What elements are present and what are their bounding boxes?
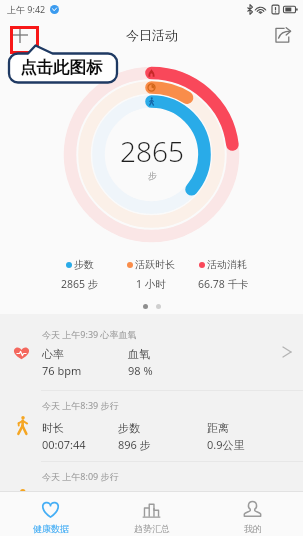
button[interactable]: 今天 上午8:39 步行 — [0, 391, 303, 461]
staticText: 今天 上午8:09 步行 — [42, 470, 119, 482]
staticText: 上午 9:42 — [7, 3, 46, 15]
button[interactable]: 今天 上午8:09 步行 — [0, 462, 303, 492]
staticText: 00:07:44 — [42, 437, 86, 452]
staticText: 我的 — [244, 523, 262, 534]
staticText: 距离 — [207, 421, 229, 435]
button[interactable]: 趋势汇总 — [101, 492, 202, 536]
staticText: 76 bpm — [42, 363, 82, 378]
staticText: 896 步 — [118, 437, 151, 452]
staticText: 今天 上午9:39 心率血氧 — [42, 328, 137, 340]
button[interactable]: 我的 — [202, 492, 303, 536]
button[interactable]: 健康数据 — [0, 492, 101, 536]
staticText: 2865 — [120, 132, 184, 170]
staticText: 活跃时长 — [135, 258, 175, 271]
staticText: 活动消耗 — [207, 258, 247, 271]
button[interactable]: Add — [8, 23, 32, 47]
staticText: 时长 — [42, 421, 64, 435]
staticText: 步 — [148, 170, 157, 181]
staticText: 健康数据 — [33, 523, 69, 534]
staticText: 步数 — [118, 421, 140, 435]
staticText: 66.78 千卡 — [198, 277, 249, 291]
staticText: 今天 上午8:39 步行 — [42, 399, 119, 411]
staticText: 点击此图标 — [20, 57, 103, 78]
staticText: 心率 — [42, 347, 64, 361]
staticText: 血氧 — [128, 347, 150, 361]
staticText: 2865 步 — [61, 277, 99, 291]
staticText: 0.9公里 — [207, 437, 245, 452]
staticText: 趋势汇总 — [134, 523, 170, 534]
staticText: 步数 — [74, 258, 94, 271]
button[interactable]: 今天 上午9:39 心率血氧 — [0, 314, 303, 390]
staticText: 98 % — [128, 363, 153, 378]
staticText: 1 小时 — [136, 277, 166, 291]
button[interactable]: Share — [271, 23, 295, 47]
staticText: 今日活动 — [126, 27, 178, 43]
